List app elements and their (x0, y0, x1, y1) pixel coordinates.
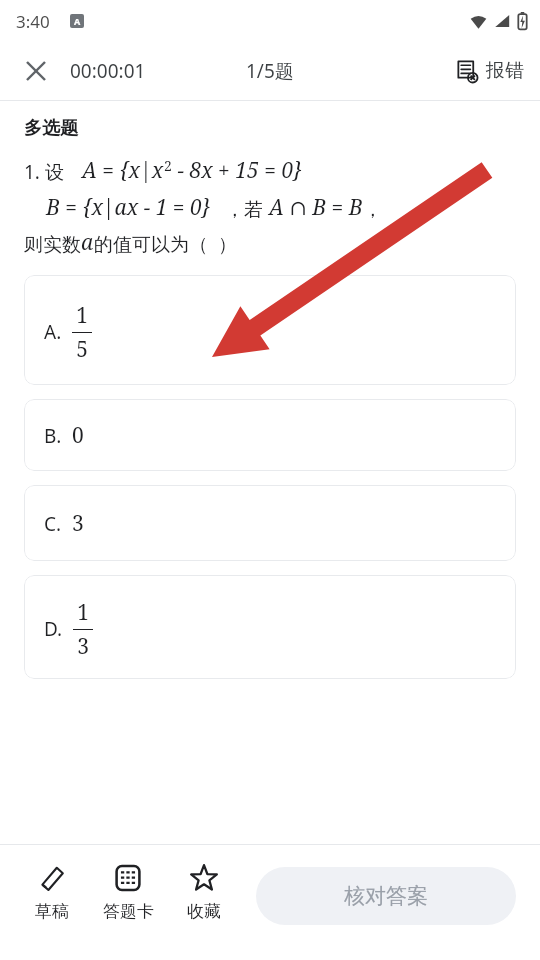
staticText: 答题卡 (103, 901, 154, 922)
button[interactable]: Answer sheet (90, 859, 166, 926)
staticText: − 8x + 15 = 0} (172, 156, 303, 185)
button[interactable]: B. (24, 399, 516, 471)
staticText: A ∩ B = B (269, 193, 363, 222)
button[interactable]: D. (24, 575, 516, 679)
button[interactable]: Draft (14, 859, 90, 926)
staticText: 多选题 (24, 117, 78, 140)
staticText: 2 (164, 156, 172, 175)
staticText: 0 (72, 421, 84, 450)
button[interactable]: 报错 (453, 53, 526, 89)
button[interactable]: Favorite (166, 859, 242, 926)
staticText: 3:40 (16, 10, 50, 33)
staticText: 3 (77, 632, 89, 661)
staticText: 则实数 (24, 233, 81, 257)
staticText: a (81, 228, 94, 257)
button[interactable]: Close (14, 49, 58, 93)
staticText: A. (44, 319, 62, 345)
staticText: A (74, 15, 81, 27)
staticText: 核对答案 (344, 883, 428, 909)
staticText: C. (44, 511, 62, 537)
staticText: 草稿 (35, 901, 69, 922)
button[interactable]: A. (24, 275, 516, 385)
staticText: 1/5题 (246, 58, 294, 84)
staticText: 的值可以为（ ） (94, 231, 237, 257)
staticText: 00:00:01 (70, 58, 146, 84)
staticText: 1 (77, 598, 89, 627)
button[interactable]: C. (24, 485, 516, 561)
staticText: ， (363, 198, 382, 222)
staticText: 1. 设 (24, 159, 64, 185)
staticText: 3 (72, 509, 84, 538)
staticText: D. (44, 616, 63, 642)
staticText: 报错 (486, 59, 524, 83)
staticText: 5 (76, 335, 88, 364)
staticText: B = {x|ax − 1 = 0} (46, 193, 211, 222)
staticText: 收藏 (187, 901, 221, 922)
staticText: 1 (76, 301, 88, 330)
staticText: A = {x|x (82, 156, 164, 185)
button[interactable]: 核对答案 (256, 867, 516, 925)
staticText: B. (44, 423, 62, 449)
staticText: ，若 (225, 198, 263, 222)
